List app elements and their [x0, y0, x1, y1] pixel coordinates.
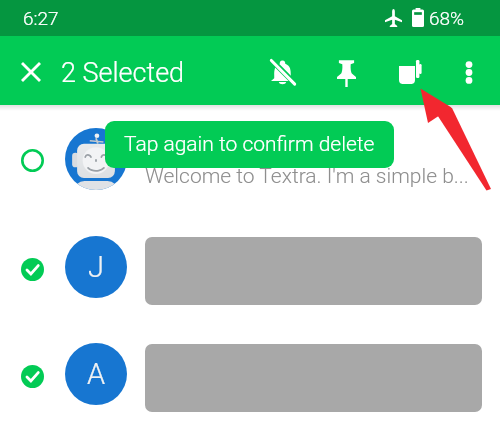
staticText: Welcome to Textra. I'm a simple b... [145, 164, 469, 189]
staticText: J [88, 250, 104, 284]
button[interactable]: More options [447, 50, 491, 94]
staticText: 6:27 [23, 7, 59, 29]
staticText: A [87, 357, 106, 391]
button[interactable] [0, 325, 500, 423]
button[interactable]: Close selection [11, 52, 51, 92]
button[interactable] [0, 218, 500, 316]
staticText: 2 Selected [61, 57, 185, 89]
button[interactable]: Tap again to confirm delete [105, 121, 394, 168]
button[interactable]: Mute notifications [260, 50, 304, 94]
button[interactable]: Delete [389, 49, 433, 93]
staticText: Tap again to confirm delete [124, 132, 375, 157]
button[interactable] [0, 111, 500, 207]
staticText: 68% [429, 7, 465, 29]
button[interactable]: Pin conversation [324, 51, 368, 95]
